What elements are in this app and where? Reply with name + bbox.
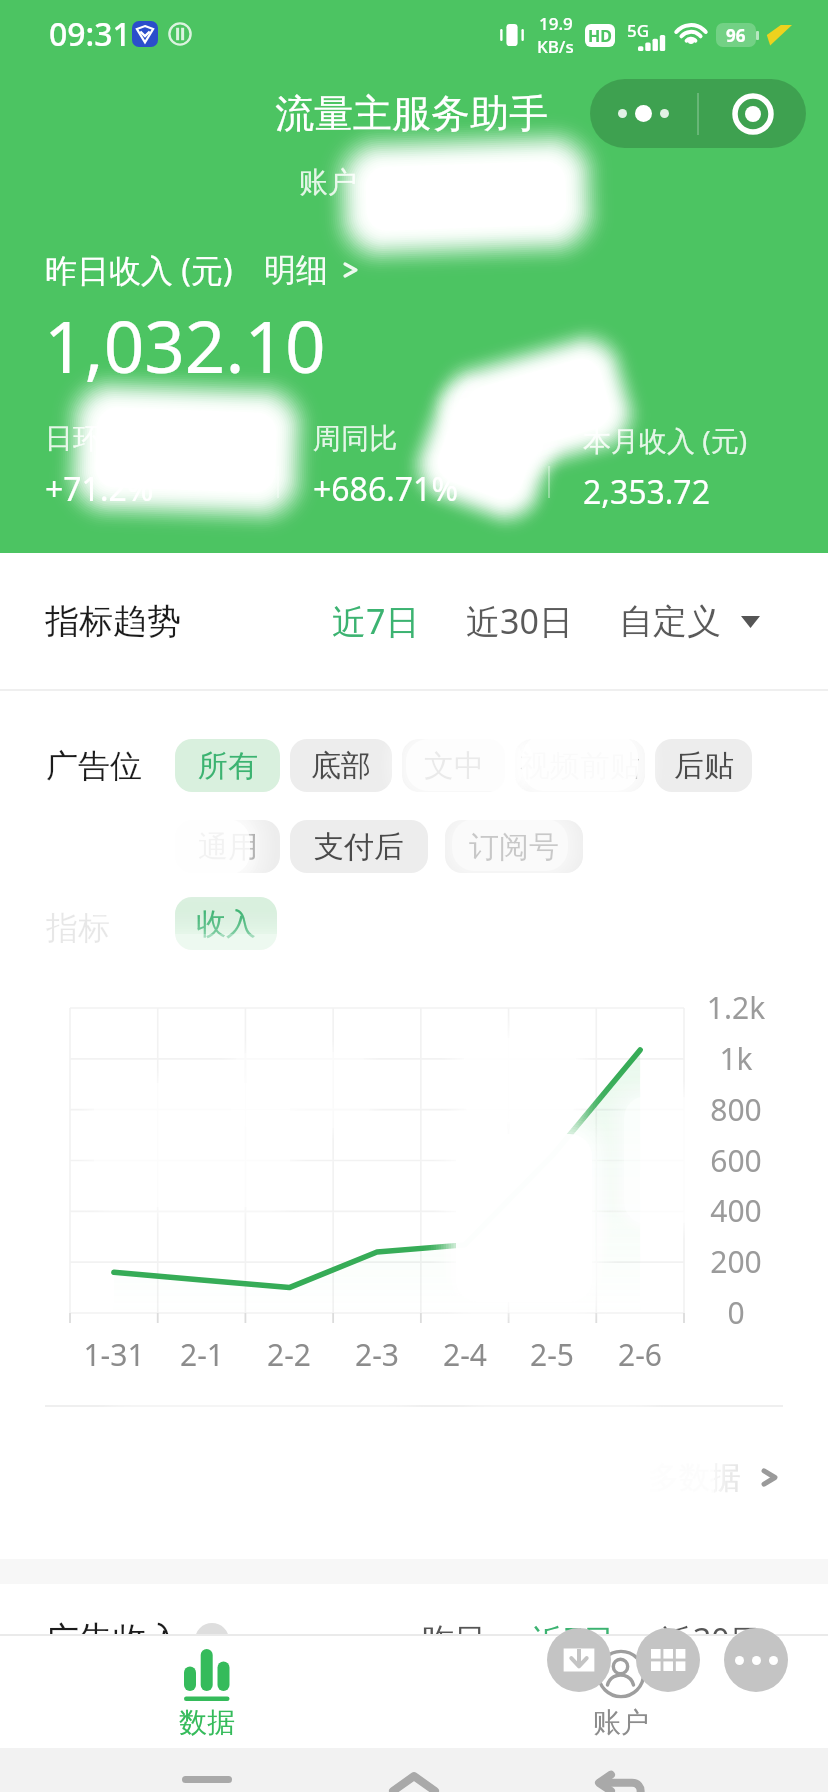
staticText: 账户 [299,164,357,201]
button[interactable]: 支付后 [290,820,428,873]
button[interactable]: 收入 [175,897,277,950]
button[interactable]: 底部 [290,739,392,792]
staticText: 1.2k [700,987,772,1028]
staticText: 所有 [198,747,258,785]
button[interactable]: 数据明细 [0,1406,828,1548]
button[interactable]: Apps [636,1628,700,1692]
staticText: HD [588,25,612,47]
staticText: 明细 [264,250,328,290]
staticText: 订阅号 [469,828,559,866]
button[interactable]: 通用 [175,820,280,873]
button[interactable]: 明细 [264,250,359,290]
staticText: 近7日 [532,1618,615,1662]
staticText: 近30日 [661,1618,762,1662]
staticText: 600 [700,1140,772,1181]
staticText: 400 [700,1190,772,1231]
staticText: 文中 [424,747,484,785]
staticText: 800 [700,1089,772,1130]
staticText: 2-1 [152,1334,252,1375]
staticText: 查看更多数据 [555,1458,741,1497]
staticText: 日环比 [45,421,129,456]
staticText: 近7日 [332,598,420,644]
staticText: 19.9 [539,12,573,35]
staticText: 通用 [198,828,258,866]
staticText: 指标趋势 [45,600,181,643]
staticText: 2-5 [502,1334,602,1375]
staticText: 广告收入 [45,1618,181,1661]
button[interactable]: 近7日 [322,586,430,656]
staticText: KB/s [537,35,574,58]
staticText: 96 [726,24,746,47]
button[interactable]: 数据 [147,1649,267,1740]
staticText: 200 [700,1241,772,1282]
staticText: 底部 [311,747,371,785]
button[interactable]: More [724,1628,788,1692]
button[interactable]: Close mini program [699,79,806,148]
staticText: +686.71% [313,467,458,511]
staticText: 2-3 [327,1334,427,1375]
staticText: 昨日收入 (元) [45,248,233,292]
staticText: 数据 [179,1705,235,1740]
staticText: 支付后 [314,828,404,866]
staticText: 1k [700,1038,772,1079]
other: Home [389,1770,439,1792]
staticText: 2,353.72 [583,470,710,514]
other: Back [596,1774,646,1792]
button[interactable]: Download [547,1628,611,1692]
button[interactable]: 自定义 [609,588,770,655]
staticText: 账户 [593,1705,649,1740]
button[interactable]: 近30日 [456,586,583,656]
staticText: 0 [700,1292,772,1333]
staticText: 昨日 [422,1620,486,1660]
staticText: 流量主服务助手 [275,89,548,138]
staticText: 5G [627,19,650,42]
button[interactable]: 后贴 [655,739,752,792]
staticText: 周同比 [313,421,397,456]
button[interactable]: 所有 [175,739,280,792]
staticText: 近30日 [466,598,573,644]
staticText: 本月收入 (元) [583,421,748,459]
staticText: +71.2% [45,467,154,511]
staticText: 2-4 [415,1334,515,1375]
staticText: 09:31 [49,12,131,56]
staticText: 收入 [196,905,256,943]
button[interactable]: 文中 [402,739,505,792]
staticText: 2-2 [239,1334,339,1375]
staticText: 1-31 [64,1334,164,1375]
button[interactable]: 订阅号 [445,820,583,873]
button[interactable]: More options [590,79,697,148]
staticText: 广告位 [46,746,142,786]
staticText: 指标 [46,908,110,948]
button[interactable]: 账户 [561,1649,681,1740]
staticText: 后贴 [674,747,734,785]
staticText: 2-6 [590,1334,690,1375]
other: Recents [182,1776,232,1783]
staticText: 自定义 [619,600,721,643]
staticText: 1,032.10 [44,297,326,394]
